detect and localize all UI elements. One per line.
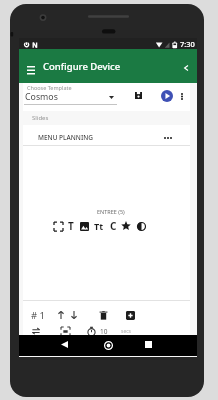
button[interactable]: Open navigation menu: [22, 60, 40, 78]
staticText: Cosmos: [25, 91, 58, 103]
button[interactable]: Save: [130, 87, 146, 103]
button[interactable]: Home: [99, 336, 118, 355]
staticText: Choose Template: [27, 84, 72, 91]
button[interactable]: C: [106, 219, 120, 233]
staticText: Slides: [32, 114, 49, 122]
button[interactable]: Crop slide: [51, 219, 65, 233]
button[interactable]: Tt: [92, 219, 106, 233]
button[interactable]: Move up: [54, 308, 68, 322]
button[interactable]: More options: [175, 89, 189, 103]
staticText: Configure Device: [43, 60, 121, 73]
button[interactable]: Favorite: [119, 219, 133, 233]
button[interactable]: Collapse: [177, 59, 195, 77]
button[interactable]: Back: [55, 335, 74, 354]
staticText: ENTREE (5): [97, 208, 125, 215]
staticText: 10: [100, 327, 108, 336]
button[interactable]: Delete slide: [96, 308, 110, 322]
button[interactable]: Duration: [84, 324, 98, 338]
staticText: 7:30: [180, 39, 195, 49]
button[interactable]: Play: [157, 86, 177, 106]
button[interactable]: Transition: [29, 324, 43, 338]
staticText: C: [110, 219, 117, 233]
button[interactable]: T: [64, 219, 78, 233]
staticText: MENU PLANNING: [38, 133, 93, 142]
button[interactable]: Move down: [67, 308, 81, 322]
button[interactable]: Recent apps: [139, 335, 158, 354]
button[interactable]: Fit to screen: [58, 324, 72, 338]
button[interactable]: Add slide: [123, 308, 137, 322]
staticText: Tt: [94, 220, 104, 232]
button[interactable]: Slide options: [161, 131, 175, 145]
staticText: # 1: [31, 309, 46, 322]
staticText: T: [68, 219, 74, 233]
button[interactable]: Insert image: [77, 219, 91, 233]
staticText: secs: [121, 328, 132, 335]
button[interactable]: Contrast: [134, 219, 148, 233]
